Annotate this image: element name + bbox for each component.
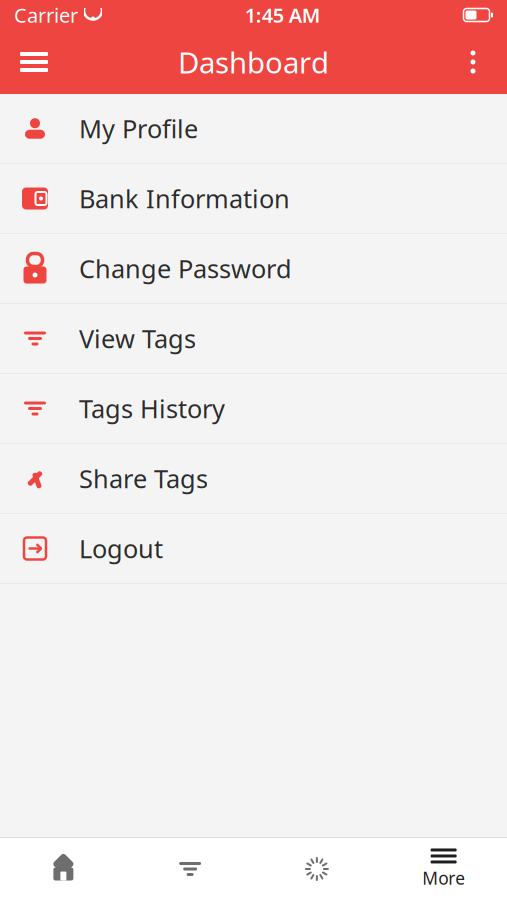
staticText: Tags History [79, 392, 225, 425]
staticText: View Tags [79, 322, 196, 355]
button[interactable]: Tab [127, 838, 254, 900]
button[interactable]: More options [447, 30, 499, 94]
staticText: Change Password [79, 252, 292, 285]
button[interactable]: View Tags [0, 304, 507, 374]
button[interactable]: More [380, 838, 507, 900]
staticText: Dashboard [178, 42, 329, 81]
button[interactable]: Bank Information [0, 164, 507, 234]
button[interactable]: Tab [253, 838, 380, 900]
staticText: Carrier [14, 2, 78, 28]
button[interactable]: Tab [0, 838, 127, 900]
staticText: Share Tags [79, 462, 208, 495]
staticText: More [422, 866, 465, 889]
button[interactable]: Tags History [0, 374, 507, 444]
staticText: Bank Information [79, 182, 290, 215]
button[interactable]: My Profile [0, 94, 507, 164]
button[interactable]: Change Password [0, 234, 507, 304]
staticText: 1:45 AM [245, 2, 321, 28]
button[interactable]: Share Tags [0, 444, 507, 514]
staticText: Logout [79, 532, 163, 565]
button[interactable]: Logout [0, 514, 507, 584]
staticText: My Profile [79, 112, 198, 145]
button[interactable]: Menu [8, 30, 60, 94]
